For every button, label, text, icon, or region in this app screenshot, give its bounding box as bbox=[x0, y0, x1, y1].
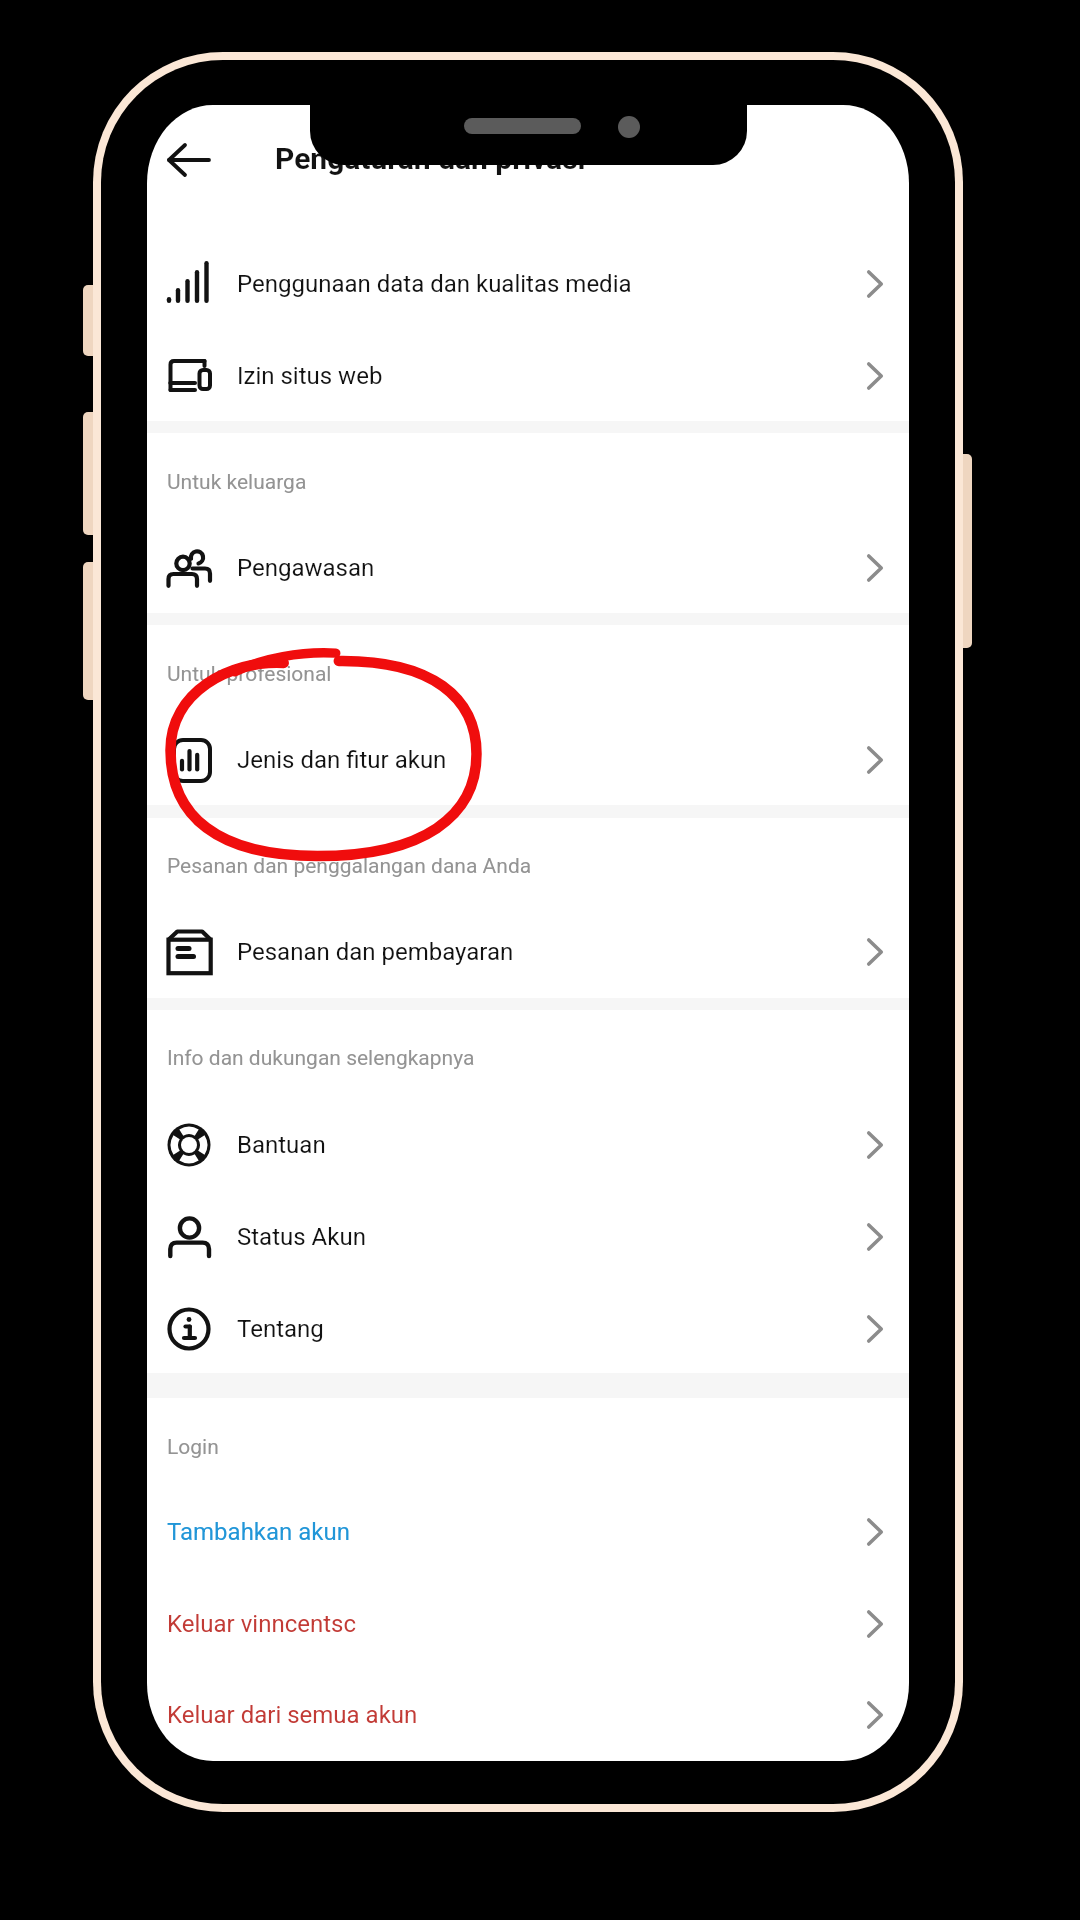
staticText: Jenis dan fitur akun bbox=[237, 746, 447, 774]
staticText: Untuk profesional bbox=[167, 662, 332, 687]
staticText: Izin situs web bbox=[237, 362, 383, 390]
button[interactable]: Back bbox=[155, 128, 221, 192]
button[interactable]: Status Akun bbox=[147, 1191, 909, 1283]
button[interactable]: Jenis dan fitur akun bbox=[147, 714, 909, 806]
button[interactable]: Pesanan dan pembayaran bbox=[147, 906, 909, 998]
staticText: Info dan dukungan selengkapnya bbox=[167, 1046, 475, 1071]
staticText: Penggunaan data dan kualitas media bbox=[237, 270, 632, 298]
staticText: Status Akun bbox=[237, 1223, 366, 1251]
button[interactable]: Bantuan bbox=[147, 1099, 909, 1191]
button[interactable]: Keluar dari semua akun bbox=[147, 1669, 909, 1761]
button[interactable]: Izin situs web bbox=[147, 330, 909, 422]
button[interactable]: Tambahkan akun bbox=[147, 1486, 909, 1578]
staticText: Pengaturan dan privasi bbox=[275, 141, 586, 176]
staticText: Login bbox=[167, 1435, 219, 1460]
staticText: Pesanan dan penggalangan dana Anda bbox=[167, 854, 532, 879]
staticText: Tambahkan akun bbox=[167, 1518, 350, 1546]
staticText: Bantuan bbox=[237, 1131, 326, 1159]
staticText: Tentang bbox=[237, 1315, 324, 1343]
button[interactable]: Keluar vinncentsc bbox=[147, 1578, 909, 1670]
staticText: Keluar dari semua akun bbox=[167, 1701, 418, 1729]
staticText: Pengawasan bbox=[237, 554, 375, 582]
staticText: Keluar vinncentsc bbox=[167, 1610, 356, 1638]
button[interactable]: Tentang bbox=[147, 1283, 909, 1375]
button[interactable]: Pengawasan bbox=[147, 522, 909, 614]
staticText: Pesanan dan pembayaran bbox=[237, 938, 514, 966]
staticText: Untuk keluarga bbox=[167, 470, 307, 495]
button[interactable]: Penggunaan data dan kualitas media bbox=[147, 238, 909, 330]
